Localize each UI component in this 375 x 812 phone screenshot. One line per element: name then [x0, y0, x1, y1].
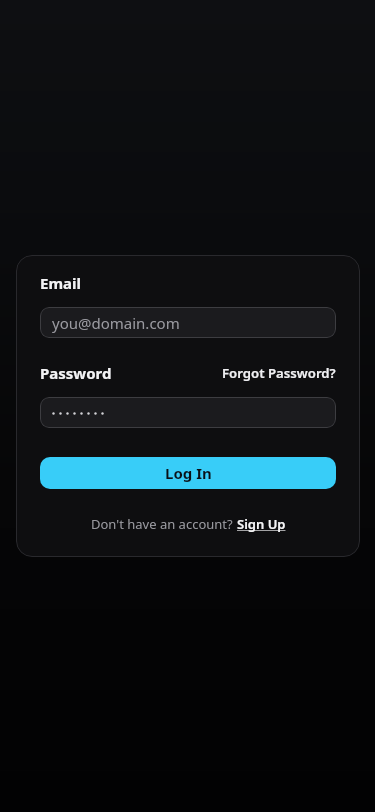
button[interactable] [40, 397, 336, 428]
staticText: you@domain.com [52, 313, 180, 333]
button[interactable]: Sign Up [237, 515, 286, 533]
staticText: Password [40, 363, 112, 383]
staticText: Log In [165, 463, 212, 483]
button[interactable]: Forgot Password? [222, 364, 336, 382]
button[interactable]: you@domain.com [40, 307, 336, 338]
button[interactable]: Log In [40, 457, 336, 489]
staticText: Don't have an account? [91, 515, 237, 533]
staticText: Email [40, 273, 81, 293]
